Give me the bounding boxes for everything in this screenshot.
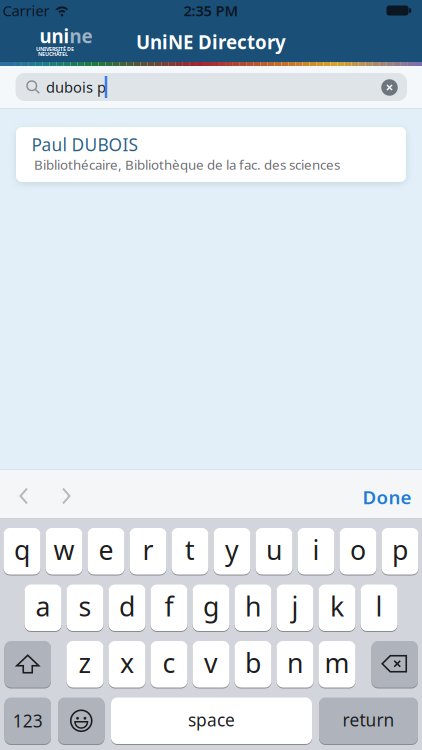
button[interactable]: b bbox=[234, 641, 271, 687]
staticText: 123 bbox=[13, 709, 43, 732]
button[interactable]: Numbers bbox=[4, 697, 51, 744]
staticText: s bbox=[78, 588, 91, 624]
button[interactable]: u bbox=[255, 528, 292, 574]
staticText: p bbox=[392, 532, 408, 567]
staticText: Bibliothécaire, Bibliothèque de la fac. … bbox=[34, 156, 340, 173]
button[interactable]: c bbox=[150, 641, 187, 687]
staticText: g bbox=[203, 588, 219, 624]
staticText: f bbox=[164, 588, 173, 624]
staticText: z bbox=[78, 645, 91, 680]
button[interactable]: p bbox=[381, 528, 418, 574]
staticText: UniNE Directory bbox=[136, 30, 286, 54]
button[interactable]: o bbox=[339, 528, 376, 574]
staticText: u bbox=[266, 532, 282, 567]
staticText: space bbox=[188, 708, 235, 731]
button[interactable]: Done bbox=[357, 482, 417, 512]
staticText: 2:35 PM bbox=[183, 1, 238, 20]
staticText: b bbox=[245, 645, 261, 680]
staticText: j bbox=[291, 588, 298, 624]
button[interactable]: n bbox=[276, 641, 313, 687]
staticText: t bbox=[185, 532, 195, 567]
button[interactable]: return bbox=[319, 697, 418, 744]
staticText: c bbox=[162, 645, 175, 680]
button[interactable]: s bbox=[66, 584, 103, 631]
button[interactable]: j bbox=[276, 584, 313, 631]
button[interactable]: Shift bbox=[4, 641, 51, 687]
button[interactable]: k bbox=[318, 584, 355, 631]
staticText: Done bbox=[362, 485, 411, 509]
staticText: e bbox=[98, 532, 113, 567]
staticText: y bbox=[225, 532, 239, 567]
button[interactable]: Previous field bbox=[12, 484, 36, 508]
button[interactable]: m bbox=[318, 641, 355, 687]
staticText: w bbox=[53, 532, 74, 567]
staticText: x bbox=[120, 645, 134, 680]
staticText: r bbox=[142, 532, 153, 567]
button[interactable]: z bbox=[66, 641, 103, 687]
button[interactable]: Clear text bbox=[381, 79, 398, 96]
button[interactable]: y bbox=[213, 528, 250, 574]
staticText: UNIVERSITÉ DE bbox=[36, 45, 74, 53]
staticText: l bbox=[375, 588, 382, 624]
button[interactable]: w bbox=[45, 528, 82, 574]
button[interactable]: x bbox=[108, 641, 145, 687]
button[interactable]: v bbox=[192, 641, 229, 687]
button[interactable]: r bbox=[129, 528, 166, 574]
button[interactable]: f bbox=[150, 584, 187, 631]
button[interactable]: Paul DUBOIS bbox=[16, 127, 406, 182]
staticText: a bbox=[35, 588, 50, 624]
staticText: uni bbox=[39, 24, 69, 48]
button[interactable]: UniNE bbox=[36, 25, 90, 59]
button[interactable]: q bbox=[3, 528, 40, 574]
staticText: v bbox=[204, 645, 218, 680]
staticText: m bbox=[324, 645, 349, 680]
button[interactable]: Emoji bbox=[58, 697, 104, 744]
staticText: i bbox=[312, 532, 319, 567]
staticText: d bbox=[119, 588, 135, 624]
button[interactable]: a bbox=[24, 584, 61, 631]
staticText: n bbox=[287, 645, 303, 680]
staticText: q bbox=[14, 532, 30, 567]
button[interactable]: Next field bbox=[54, 484, 78, 508]
staticText: k bbox=[330, 588, 344, 624]
button[interactable]: l bbox=[360, 584, 397, 631]
staticText: ne bbox=[69, 24, 92, 48]
staticText: h bbox=[245, 588, 261, 624]
staticText: dubois p bbox=[46, 77, 106, 97]
button[interactable]: space bbox=[111, 697, 312, 744]
button[interactable]: t bbox=[171, 528, 208, 574]
button[interactable]: g bbox=[192, 584, 229, 631]
button[interactable]: e bbox=[87, 528, 124, 574]
staticText: NEUCHÂTEL bbox=[38, 50, 68, 58]
staticText: Paul DUBOIS bbox=[31, 133, 138, 156]
button[interactable]: h bbox=[234, 584, 271, 631]
button[interactable]: d bbox=[108, 584, 145, 631]
button[interactable]: Delete bbox=[371, 641, 418, 687]
staticText: return bbox=[342, 708, 394, 731]
staticText: Carrier bbox=[2, 1, 49, 20]
button[interactable]: i bbox=[297, 528, 334, 574]
staticText: o bbox=[350, 532, 366, 567]
